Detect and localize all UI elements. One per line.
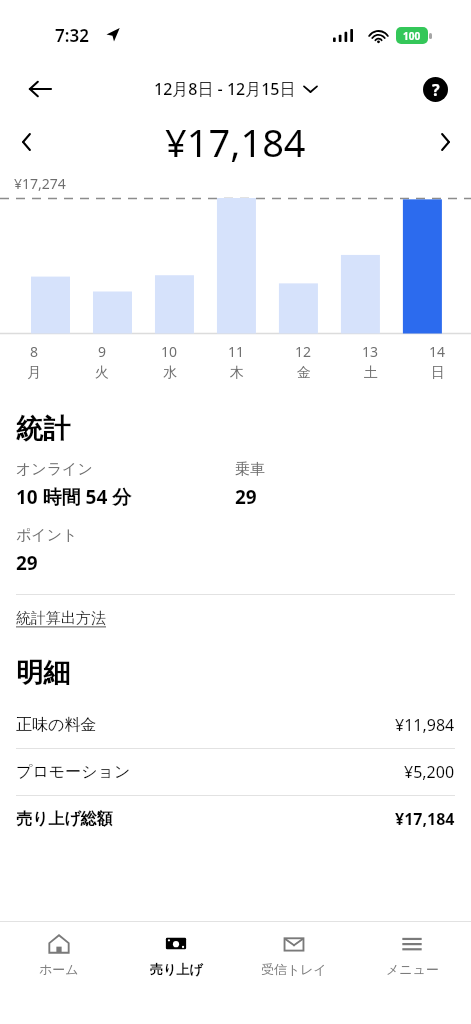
staticText: 13 bbox=[362, 342, 379, 361]
staticText: プロモーション bbox=[16, 762, 131, 782]
staticText: ¥17,184 bbox=[165, 116, 306, 168]
staticText: 12 bbox=[295, 342, 312, 361]
button[interactable]: プロモーション bbox=[16, 749, 455, 795]
staticText: ¥17,184 bbox=[395, 808, 455, 830]
button[interactable]: ホーム bbox=[0, 922, 117, 977]
staticText: ¥11,984 bbox=[395, 714, 455, 736]
staticText: 7:32 bbox=[55, 24, 89, 47]
button[interactable]: 正味の料金 bbox=[16, 702, 455, 748]
staticText: ホーム bbox=[39, 961, 79, 977]
staticText: 29 bbox=[16, 550, 38, 576]
button[interactable]: Previous week bbox=[6, 122, 46, 162]
button[interactable]: Help bbox=[413, 67, 457, 111]
staticText: 正味の料金 bbox=[16, 715, 97, 735]
staticText: 統計算出方法 bbox=[16, 609, 106, 628]
staticText: 9 bbox=[98, 342, 107, 361]
staticText: 火 bbox=[95, 364, 109, 382]
staticText: ¥5,200 bbox=[404, 761, 455, 783]
staticText: ? bbox=[432, 79, 440, 101]
button[interactable]: 12月8日 - 12月15日 bbox=[154, 78, 317, 100]
staticText: 受信トレイ bbox=[261, 961, 327, 977]
button[interactable]: メニュー bbox=[353, 922, 471, 977]
staticText: 12月8日 - 12月15日 bbox=[154, 78, 296, 100]
staticText: 14 bbox=[429, 342, 446, 361]
staticText: 月 bbox=[27, 364, 41, 382]
staticText: 100 bbox=[403, 29, 421, 43]
staticText: 木 bbox=[230, 364, 244, 382]
staticText: 10 時間 54 分 bbox=[16, 484, 132, 510]
button[interactable]: 売り上げ総額 bbox=[16, 796, 455, 842]
staticText: 金 bbox=[297, 364, 311, 382]
button[interactable]: 受信トレイ bbox=[235, 922, 353, 977]
staticText: 10 bbox=[161, 342, 178, 361]
staticText: 明細 bbox=[16, 656, 70, 690]
staticText: 乗車 bbox=[235, 460, 265, 479]
staticText: ¥17,274 bbox=[14, 174, 66, 193]
staticText: 統計 bbox=[16, 412, 70, 446]
staticText: オンライン bbox=[16, 460, 93, 479]
staticText: 土 bbox=[364, 364, 378, 382]
staticText: 日 bbox=[431, 364, 445, 382]
staticText: 11 bbox=[228, 342, 245, 361]
staticText: メニュー bbox=[386, 961, 439, 977]
staticText: 水 bbox=[163, 364, 177, 382]
button[interactable]: Next week bbox=[425, 122, 465, 162]
button[interactable]: 売り上げ bbox=[117, 922, 235, 977]
staticText: 29 bbox=[235, 484, 257, 510]
button[interactable]: Back bbox=[18, 67, 62, 111]
staticText: ポイント bbox=[16, 526, 78, 545]
button[interactable]: 統計算出方法 bbox=[16, 609, 106, 628]
staticText: 売り上げ総額 bbox=[16, 809, 113, 829]
staticText: 8 bbox=[30, 342, 39, 361]
staticText: 売り上げ bbox=[150, 961, 203, 977]
